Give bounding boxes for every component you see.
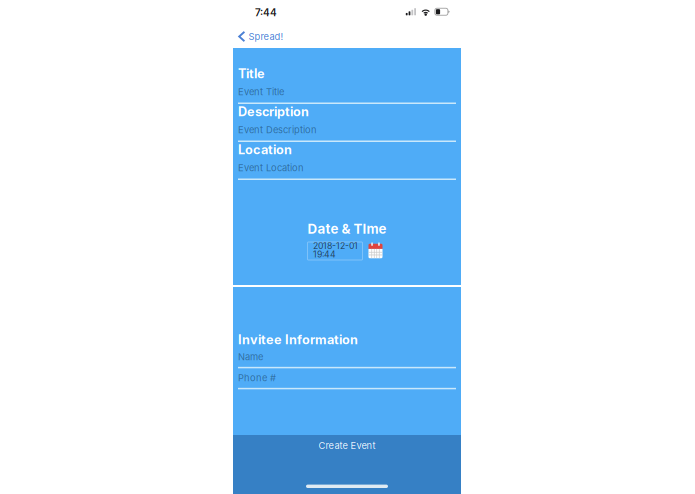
staticText: Date & TIme: [307, 221, 386, 237]
staticText: 2018-12-01: [313, 240, 358, 251]
staticText: Name: [238, 351, 263, 363]
staticText: Event Description: [238, 124, 317, 136]
staticText: Spread!: [249, 31, 284, 42]
staticText: Create Event: [318, 440, 375, 451]
staticText: Phone #: [238, 372, 276, 384]
staticText: 7:44: [255, 6, 277, 19]
staticText: Invitee Information: [238, 332, 358, 347]
staticText: Title: [238, 66, 265, 81]
button[interactable]: Create Event: [233, 435, 461, 494]
staticText: Description: [238, 104, 309, 119]
button[interactable]: Spread!: [233, 25, 293, 45]
staticText: Location: [238, 142, 292, 157]
staticText: 19:44: [313, 249, 336, 259]
staticText: Event Title: [238, 86, 284, 98]
staticText: Event Location: [238, 162, 304, 174]
